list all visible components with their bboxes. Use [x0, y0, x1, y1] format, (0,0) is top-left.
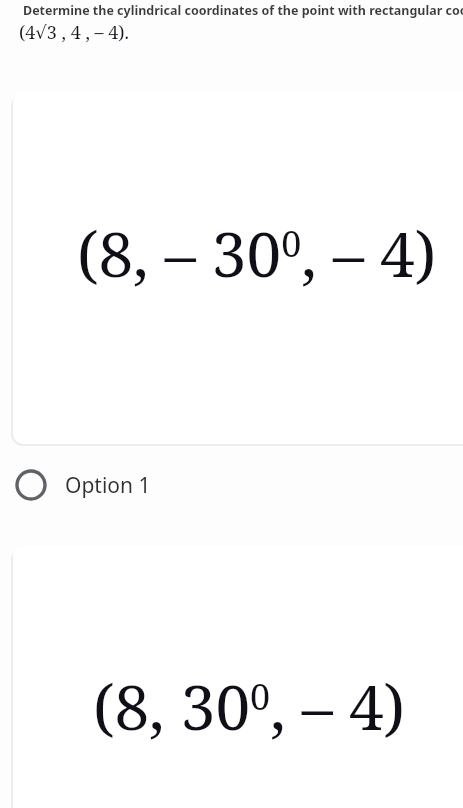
staticText: (4√3 , 4 , – 4).: [19, 20, 130, 45]
staticText: (8, 300, – 4): [93, 664, 406, 748]
staticText: Option 1: [65, 471, 151, 500]
other: Select Option 1: [15, 469, 47, 501]
staticText: Determine the cylindrical coordinates of…: [23, 2, 463, 19]
staticText: (8, – 300, – 4): [77, 211, 437, 295]
button[interactable]: (8, – 300, – 4): [13, 93, 463, 444]
button[interactable]: (8, 300, – 4): [13, 546, 463, 808]
button[interactable]: Select Option 1: [0, 462, 463, 508]
